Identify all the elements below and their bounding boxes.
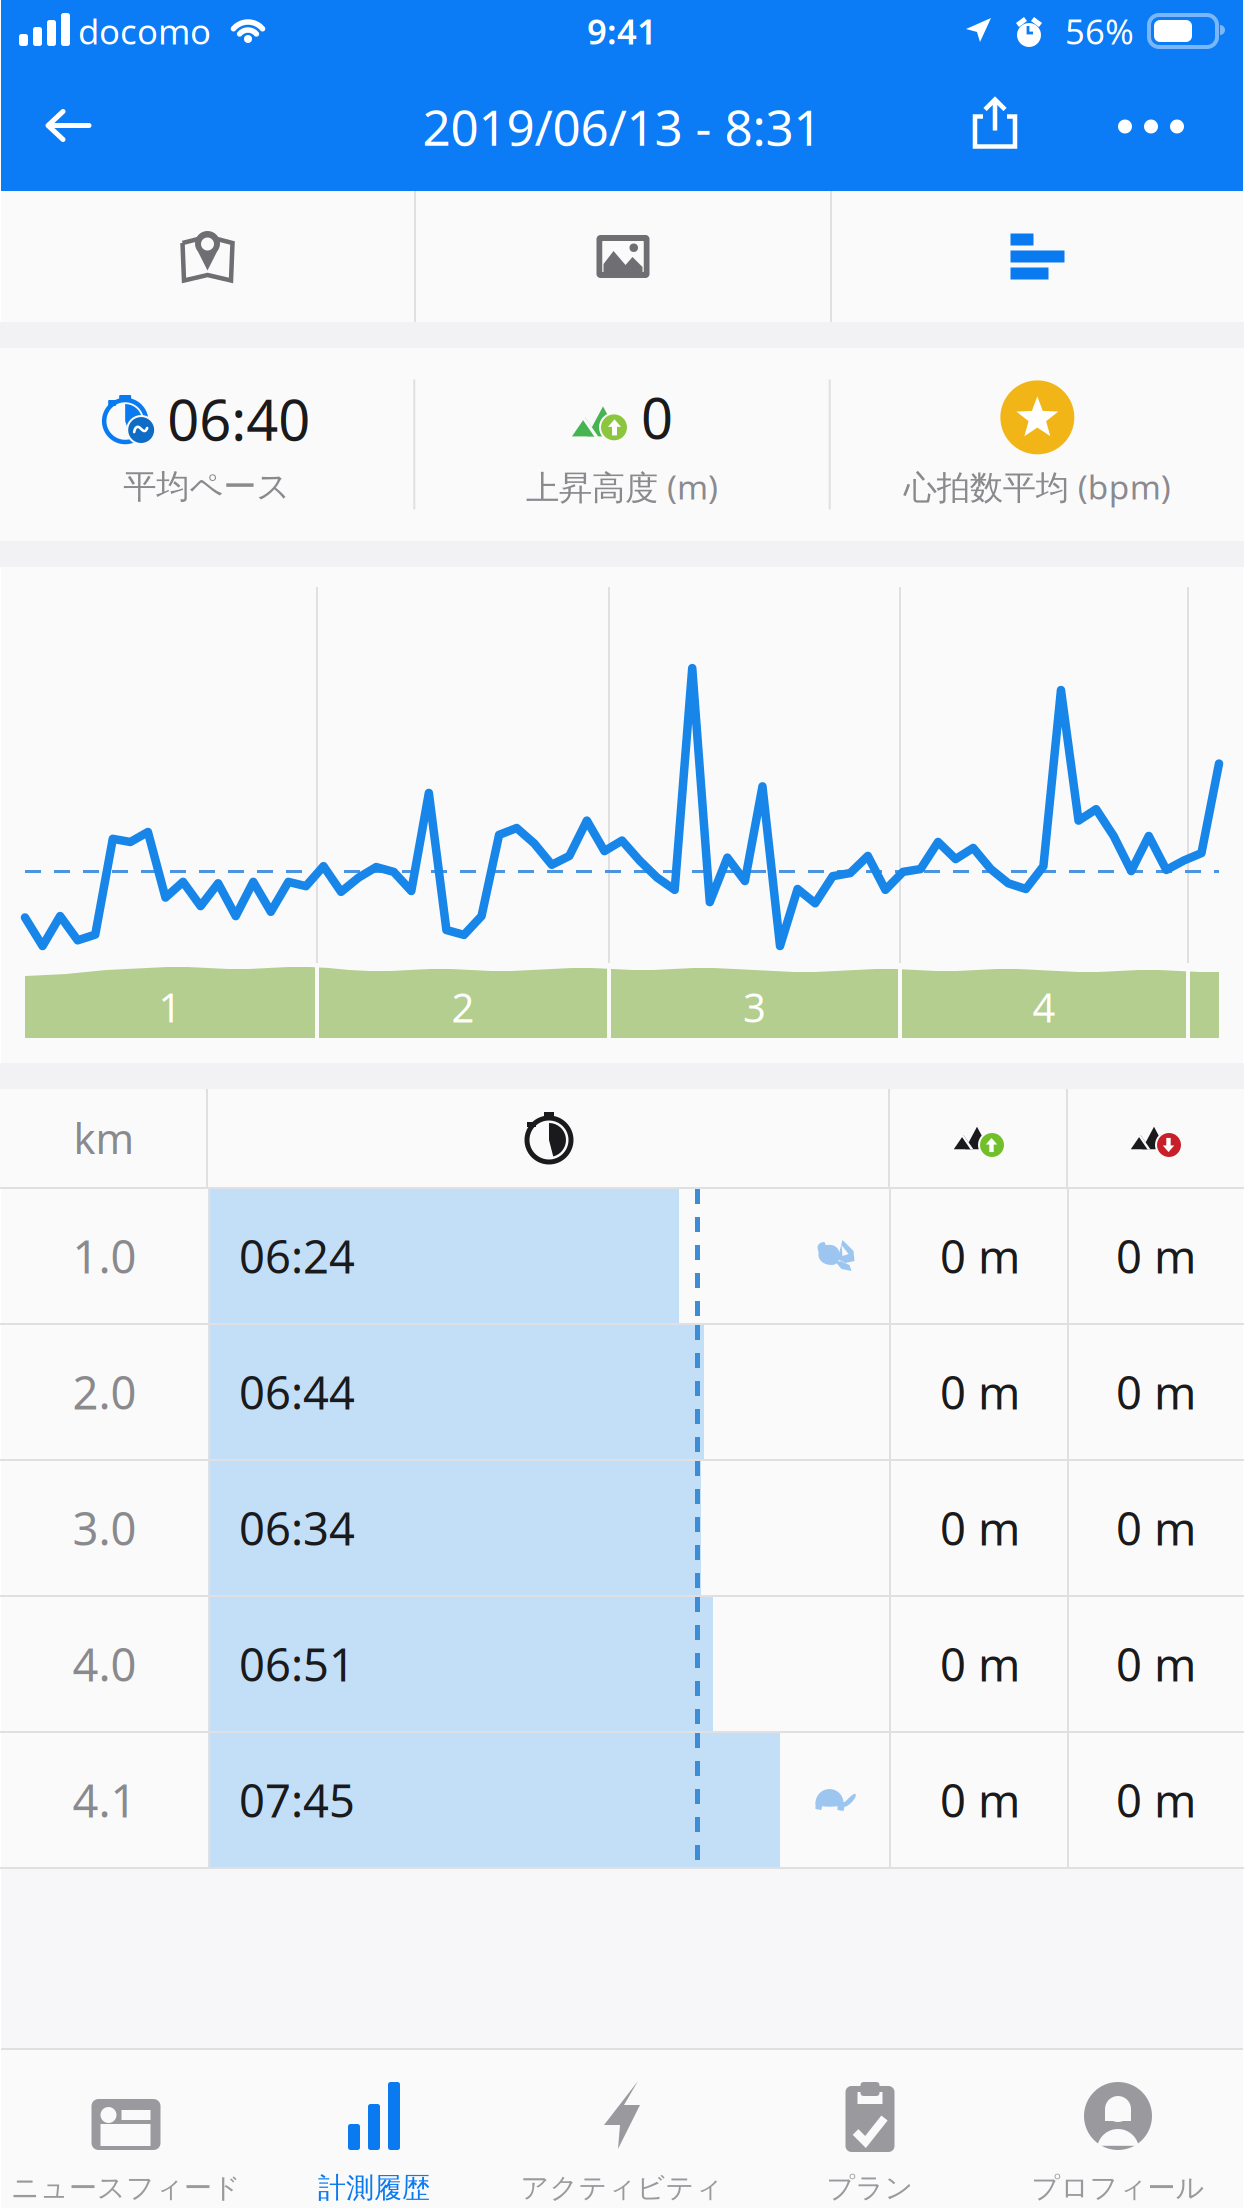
button[interactable]: プロフィール [994,2050,1242,2208]
staticText: 3 [743,980,766,1033]
staticText: 9:41 [587,8,657,54]
button[interactable]: プラン [746,2050,994,2208]
staticText: プラン [826,2171,913,2205]
staticText: 3.0 [72,1498,136,1558]
staticText: 心拍数平均 (bpm) [904,464,1171,509]
button[interactable]: Share [938,62,1058,191]
staticText: 0 m [940,1634,1020,1694]
staticText: 06:24 [239,1226,355,1286]
staticText: 06:51 [239,1634,355,1694]
staticText: km [73,1111,134,1165]
staticText: プロフィール [1031,2171,1204,2205]
staticText: アクティビティ [520,2171,723,2205]
button[interactable]: ニュースフィード [2,2050,250,2208]
staticText: 0 m [940,1770,1020,1830]
button[interactable]: Charts [832,191,1243,322]
staticText: 0 m [1116,1362,1196,1422]
staticText: 06:44 [239,1362,355,1422]
staticText: 2019/06/13 - 8:31 [422,94,821,159]
button[interactable]: 計測履歴 [250,2050,498,2208]
staticText: 1 [158,980,181,1033]
staticText: 平均ペース [123,466,290,507]
staticText: 07:45 [239,1770,355,1830]
staticText: 0 m [940,1226,1020,1286]
button[interactable]: アクティビティ [498,2050,746,2208]
button[interactable]: Back [9,62,129,191]
staticText: 上昇高度 (m) [526,465,718,509]
staticText: 0 m [940,1362,1020,1422]
staticText: 06:34 [239,1498,355,1558]
staticText: 2 [451,980,474,1033]
staticText: 0 m [940,1498,1020,1558]
staticText: 4 [1032,980,1055,1033]
staticText: ニュースフィード [11,2171,241,2205]
staticText: 0 [641,380,673,455]
staticText: 計測履歴 [318,2171,430,2205]
staticText: 56% [1065,8,1134,54]
staticText: 0 m [1116,1634,1196,1694]
button[interactable]: Photos [416,191,830,322]
staticText: 0 m [1116,1498,1196,1558]
staticText: 4.1 [72,1770,136,1830]
staticText: 0 m [1116,1226,1196,1286]
button[interactable]: Map [1,191,414,322]
staticText: 06:40 [167,382,310,456]
staticText: 0 m [1116,1770,1196,1830]
staticText: docomo [78,8,211,54]
button[interactable]: More [1091,62,1211,191]
staticText: 4.0 [72,1634,136,1694]
staticText: 1.0 [72,1226,136,1286]
staticText: 2.0 [72,1362,136,1422]
